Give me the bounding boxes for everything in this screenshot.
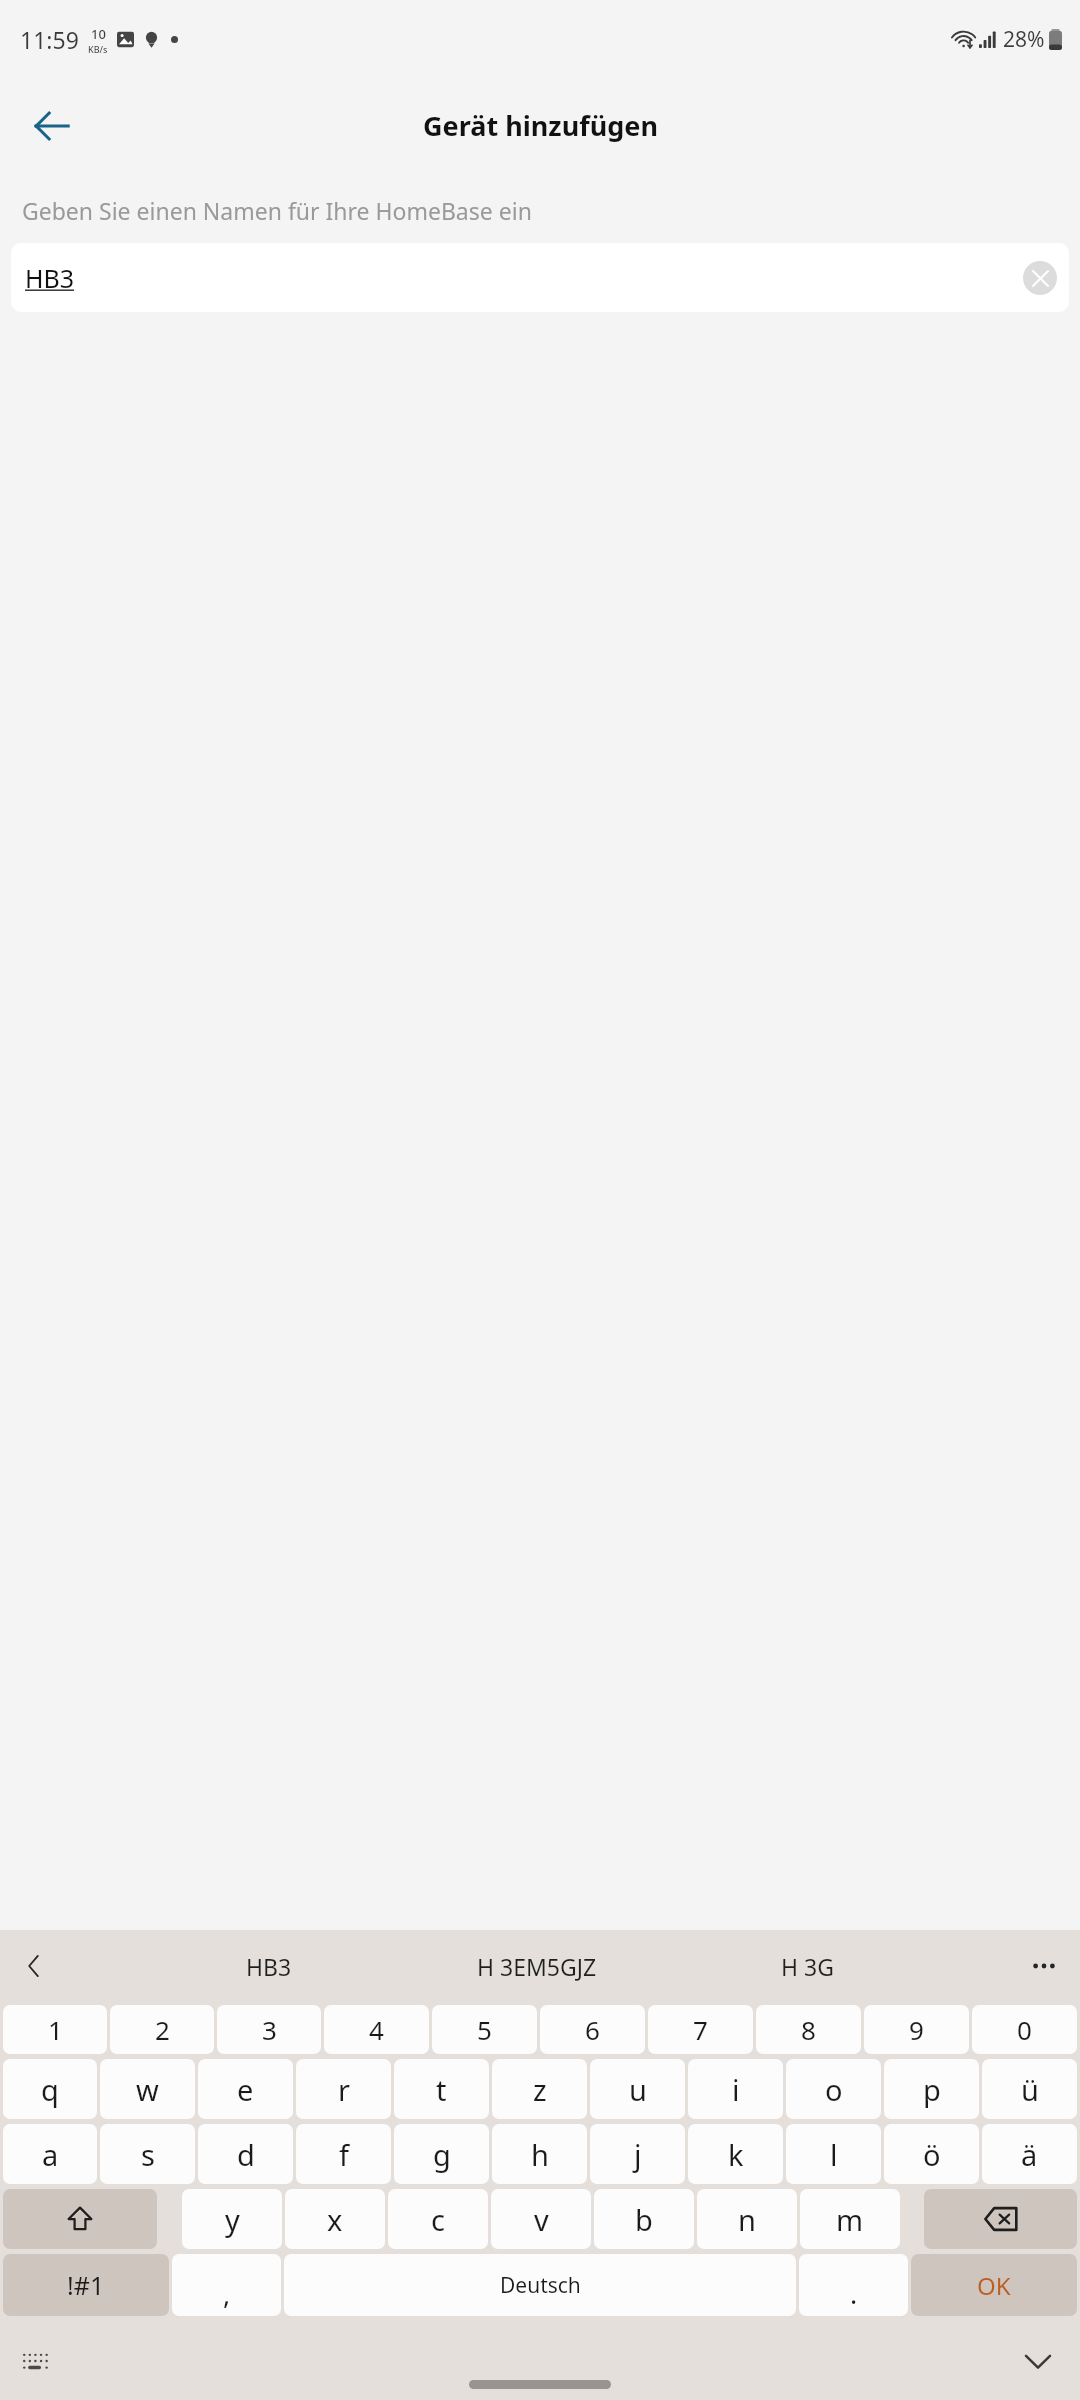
staticText: o xyxy=(825,2070,843,2109)
button[interactable]: 4 xyxy=(324,2005,429,2054)
staticText: H 3G xyxy=(781,1951,834,1982)
button[interactable]: e xyxy=(198,2059,293,2119)
staticText: 28% xyxy=(1003,25,1045,54)
staticText: H 3EM5GJZ xyxy=(477,1951,597,1982)
staticText: u xyxy=(629,2070,647,2109)
staticText: k xyxy=(728,2135,744,2174)
button[interactable]: z xyxy=(492,2059,587,2119)
button[interactable]: 0 xyxy=(972,2005,1077,2054)
button[interactable]: 2 xyxy=(110,2005,214,2054)
staticText: !#1 xyxy=(67,2268,105,2302)
button[interactable]: m xyxy=(800,2189,900,2249)
button[interactable]: 8 xyxy=(756,2005,861,2054)
button[interactable]: 6 xyxy=(540,2005,645,2054)
staticText: 6 xyxy=(585,2012,600,2047)
button[interactable]: c xyxy=(388,2189,488,2249)
button[interactable]: 5 xyxy=(432,2005,537,2054)
staticText: f xyxy=(339,2135,349,2174)
button[interactable]: , xyxy=(172,2254,281,2316)
button[interactable]: q xyxy=(3,2059,97,2119)
staticText: 2 xyxy=(155,2012,170,2047)
button[interactable]: !#1 xyxy=(3,2254,169,2316)
staticText: b xyxy=(635,2200,653,2239)
staticText: 4 xyxy=(369,2012,384,2047)
button[interactable]: h xyxy=(492,2124,587,2184)
button[interactable]: H 3EM5GJZ xyxy=(469,1945,605,1988)
button[interactable]: b xyxy=(594,2189,694,2249)
button[interactable]: Umschalt xyxy=(3,2189,157,2249)
button[interactable]: Löschen xyxy=(1023,261,1057,295)
staticText: t xyxy=(436,2070,447,2109)
staticText: m xyxy=(836,2200,864,2239)
button[interactable]: 1 xyxy=(3,2005,107,2054)
button[interactable]: n xyxy=(697,2189,797,2249)
button[interactable]: Zurück xyxy=(22,96,82,156)
staticText: e xyxy=(237,2070,254,2109)
button[interactable]: ä xyxy=(982,2124,1077,2184)
button[interactable]: t xyxy=(394,2059,489,2119)
button[interactable]: x xyxy=(285,2189,385,2249)
button[interactable]: d xyxy=(198,2124,293,2184)
button[interactable]: i xyxy=(688,2059,783,2119)
staticText: r xyxy=(338,2070,350,2109)
button[interactable]: u xyxy=(590,2059,685,2119)
button[interactable]: 3 xyxy=(217,2005,321,2054)
button[interactable]: f xyxy=(296,2124,391,2184)
button[interactable]: HB3 xyxy=(11,243,1069,312)
button[interactable]: o xyxy=(786,2059,881,2119)
button[interactable]: p xyxy=(884,2059,979,2119)
button[interactable]: Tastatur schließen xyxy=(1010,2333,1066,2389)
staticText: a xyxy=(42,2135,59,2174)
staticText: KB/s xyxy=(88,43,108,55)
button[interactable]: ü xyxy=(982,2059,1077,2119)
button[interactable]: Rücktaste xyxy=(924,2189,1077,2249)
staticText: 7 xyxy=(693,2012,708,2047)
staticText: w xyxy=(136,2070,159,2109)
button[interactable]: w xyxy=(100,2059,195,2119)
staticText: HB3 xyxy=(246,1951,292,1982)
staticText: ä xyxy=(1021,2135,1038,2174)
button[interactable]: H 3G xyxy=(773,1945,842,1988)
button[interactable]: Vorherige Vorschläge xyxy=(8,1940,60,1992)
staticText: 5 xyxy=(477,2012,492,2047)
button[interactable]: r xyxy=(296,2059,391,2119)
staticText: 8 xyxy=(801,2012,816,2047)
staticText: , xyxy=(223,2275,231,2312)
staticText: l xyxy=(830,2135,838,2174)
staticText: v xyxy=(534,2200,549,2239)
staticText: 3 xyxy=(262,2012,277,2047)
button[interactable]: a xyxy=(3,2124,97,2184)
staticText: OK xyxy=(977,2269,1011,2302)
button[interactable]: g xyxy=(394,2124,489,2184)
staticText: HB3 xyxy=(25,261,75,295)
button[interactable]: k xyxy=(688,2124,783,2184)
staticText: p xyxy=(923,2070,941,2109)
staticText: 1 xyxy=(48,2012,63,2047)
button[interactable]: l xyxy=(786,2124,881,2184)
staticText: q xyxy=(41,2070,59,2109)
staticText: ü xyxy=(1021,2070,1039,2109)
staticText: s xyxy=(141,2135,155,2174)
button[interactable]: y xyxy=(182,2189,282,2249)
button[interactable]: . xyxy=(799,2254,908,2316)
button[interactable]: Tastatur wechseln xyxy=(10,2335,62,2387)
staticText: 11:59 xyxy=(20,24,79,55)
staticText: x xyxy=(327,2200,343,2239)
button[interactable]: j xyxy=(590,2124,685,2184)
button[interactable]: OK xyxy=(911,2254,1077,2316)
button[interactable]: Weitere Optionen xyxy=(1018,1940,1070,1992)
button[interactable]: Deutsch xyxy=(284,2254,796,2316)
staticText: g xyxy=(433,2135,451,2174)
button[interactable]: HB3 xyxy=(238,1945,300,1988)
button[interactable]: v xyxy=(491,2189,591,2249)
button[interactable]: s xyxy=(100,2124,195,2184)
staticText: ö xyxy=(923,2135,941,2174)
staticText: i xyxy=(732,2070,740,2109)
button[interactable]: 7 xyxy=(648,2005,753,2054)
staticText: Geben Sie einen Namen für Ihre HomeBase … xyxy=(22,195,532,226)
button[interactable]: 9 xyxy=(864,2005,969,2054)
staticText: Deutsch xyxy=(500,2271,581,2300)
button[interactable]: ö xyxy=(884,2124,979,2184)
staticText: h xyxy=(531,2135,549,2174)
staticText: n xyxy=(738,2200,756,2239)
